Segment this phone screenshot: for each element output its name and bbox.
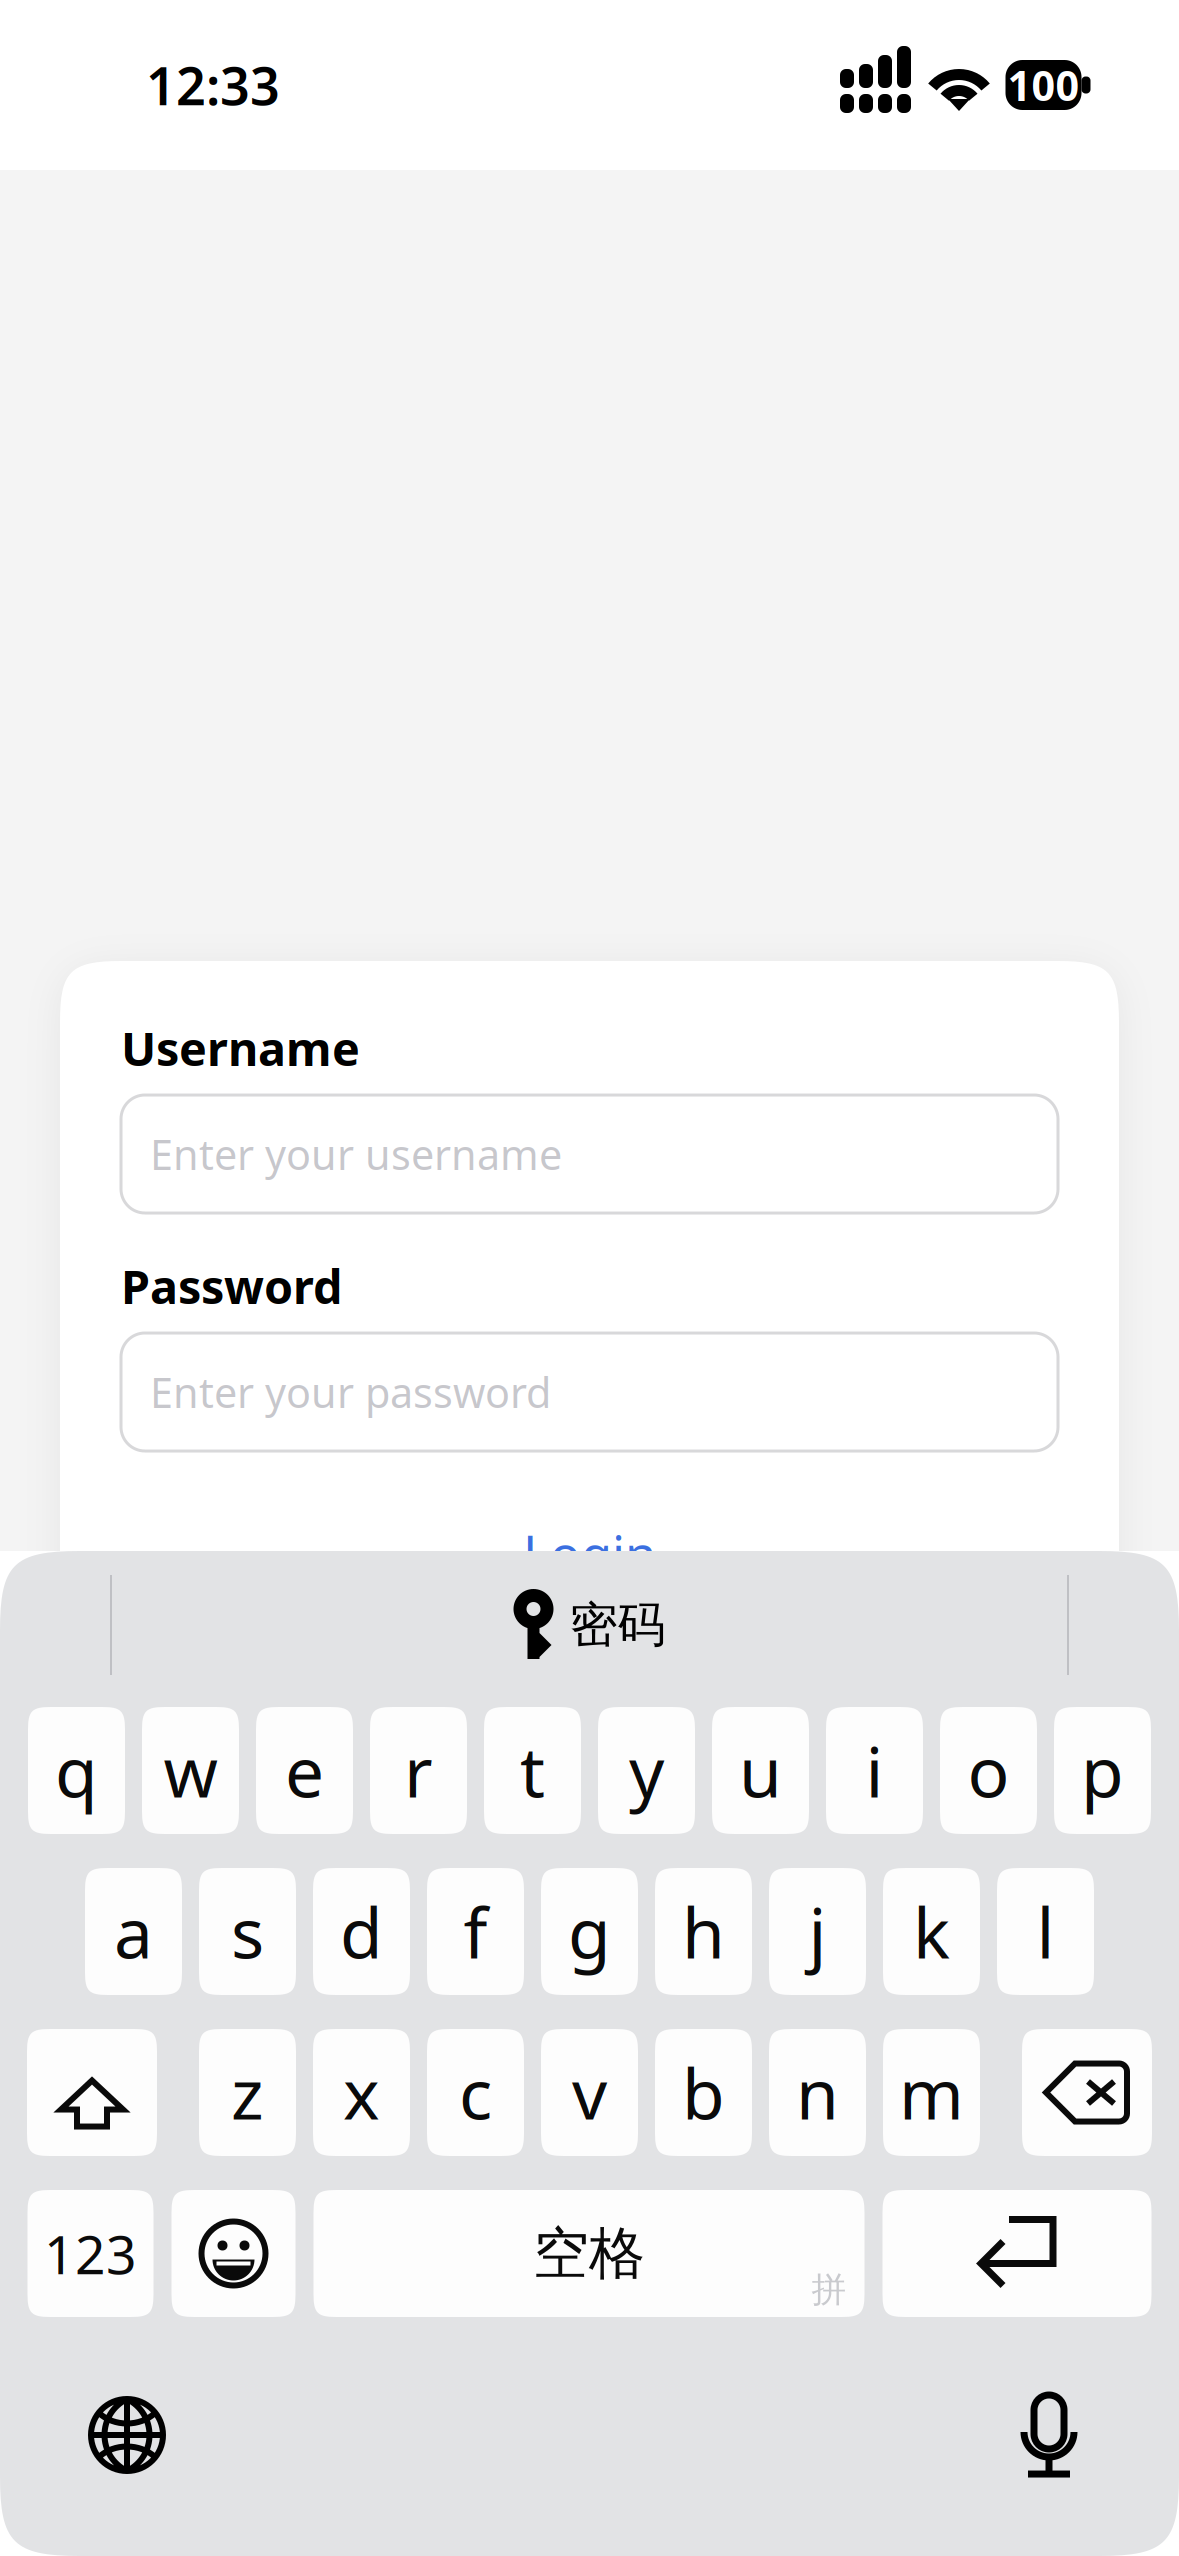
button[interactable]: Shift (27, 2029, 157, 2156)
button[interactable]: o (940, 1707, 1037, 1834)
staticText: m (899, 2046, 964, 2139)
button[interactable]: r (370, 1707, 467, 1834)
staticText: b (682, 2046, 725, 2139)
staticText: t (520, 1724, 545, 1817)
staticText: r (404, 1724, 433, 1817)
staticText: z (231, 2046, 264, 2139)
button[interactable]: q (28, 1707, 125, 1834)
staticText: d (340, 1885, 383, 1978)
button[interactable]: Next keyboard (88, 2396, 166, 2474)
button[interactable]: y (598, 1707, 695, 1834)
staticText: p (1081, 1724, 1124, 1817)
button[interactable]: Emoji (171, 2190, 295, 2317)
button[interactable]: n (769, 2029, 866, 2156)
button[interactable]: w (142, 1707, 239, 1834)
staticText: e (285, 1724, 324, 1817)
button[interactable]: g (541, 1868, 638, 1995)
button[interactable]: v (541, 2029, 638, 2156)
staticText: a (114, 1885, 153, 1978)
staticText: 密码 (569, 1595, 665, 1654)
button[interactable]: 123 (27, 2190, 153, 2317)
staticText: s (231, 1885, 264, 1978)
button[interactable]: k (883, 1868, 980, 1995)
button[interactable]: a (85, 1868, 182, 1995)
button[interactable]: j (769, 1868, 866, 1995)
staticText: o (967, 1724, 1009, 1817)
button[interactable]: Login (121, 1525, 1058, 1581)
staticText: Enter your username (150, 1127, 562, 1181)
staticText: 空格 (533, 2219, 645, 2288)
staticText: 123 (44, 2218, 137, 2289)
button[interactable]: Return (882, 2190, 1151, 2317)
button[interactable]: 空格 (313, 2190, 864, 2317)
button[interactable]: i (826, 1707, 923, 1834)
button[interactable]: b (655, 2029, 752, 2156)
staticText: f (463, 1885, 487, 1978)
staticText: y (629, 1724, 664, 1817)
button[interactable]: x (313, 2029, 410, 2156)
staticText: g (568, 1885, 611, 1978)
staticText: 12:33 (146, 50, 280, 120)
button[interactable]: s (199, 1868, 296, 1995)
button[interactable]: e (256, 1707, 353, 1834)
staticText: l (1036, 1885, 1054, 1978)
button[interactable]: t (484, 1707, 581, 1834)
button[interactable]: m (883, 2029, 980, 2156)
button[interactable]: l (997, 1868, 1094, 1995)
button[interactable]: p (1054, 1707, 1151, 1834)
staticText: Login (523, 1519, 656, 1587)
button[interactable]: z (199, 2029, 296, 2156)
button[interactable]: Dictation (1016, 2390, 1082, 2480)
button[interactable]: Delete (1022, 2029, 1152, 2156)
staticText: j (808, 1885, 826, 1978)
staticText: x (343, 2046, 380, 2139)
staticText: i (865, 1724, 883, 1817)
button[interactable]: u (712, 1707, 809, 1834)
staticText: 拼 (811, 2268, 846, 2311)
staticText: h (682, 1885, 725, 1978)
staticText: 100 (1007, 58, 1079, 112)
button[interactable]: d (313, 1868, 410, 1995)
staticText: u (739, 1724, 782, 1817)
staticText: q (55, 1724, 98, 1817)
button[interactable]: f (427, 1868, 524, 1995)
staticText: Enter your password (150, 1365, 551, 1419)
button[interactable]: c (427, 2029, 524, 2156)
staticText: k (913, 1885, 950, 1978)
staticText: Password (121, 1255, 342, 1317)
staticText: v (572, 2046, 607, 2139)
staticText: n (796, 2046, 839, 2139)
staticText: Username (121, 1017, 360, 1079)
staticText: w (163, 1724, 217, 1817)
button[interactable]: h (655, 1868, 752, 1995)
staticText: c (459, 2046, 492, 2139)
